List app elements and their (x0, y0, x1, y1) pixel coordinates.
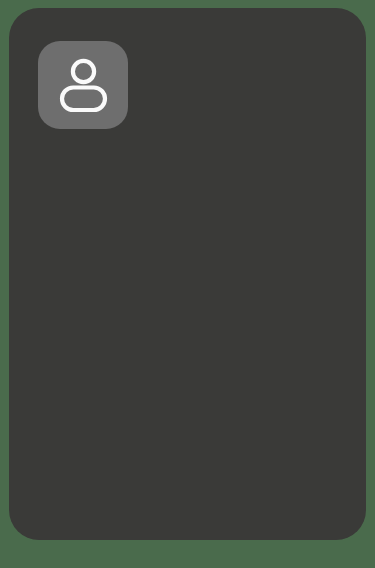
button[interactable]: Profile (38, 41, 128, 129)
button[interactable]: Profile (9, 8, 366, 540)
